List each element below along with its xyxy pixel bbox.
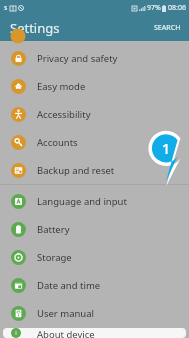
button[interactable]: Accounts [0,128,189,156]
staticText: 97% [147,3,161,13]
staticText: About device [37,328,95,338]
button[interactable]: Battery [0,215,189,243]
button[interactable]: Backup and reset [0,156,189,184]
staticText: Language and input [37,195,127,208]
staticText: Accessibility [37,108,91,121]
button[interactable]: Easy mode [0,72,189,100]
staticText: 1 [144,138,188,158]
button[interactable]: Accessibility [0,100,189,128]
button[interactable]: Step 1 marker [144,129,188,187]
staticText: Date and time [37,279,101,292]
button[interactable]: SEARCH [146,17,189,39]
staticText: Storage [37,251,72,264]
staticText: Settings [10,19,60,37]
button[interactable]: Language and input [0,187,189,215]
button[interactable]: Privacy and safety [0,44,189,72]
staticText: User manual [37,307,94,320]
staticText: Accounts [37,136,78,149]
staticText: Battery [37,223,70,236]
button[interactable]: Date and time [0,271,189,299]
staticText: 08:06 [168,3,186,13]
staticText: Easy mode [37,80,86,93]
staticText: S [4,4,8,12]
staticText: Backup and reset [37,164,115,177]
button[interactable]: About device [3,328,186,338]
button[interactable]: User manual [0,299,189,327]
button[interactable]: Storage [0,243,189,271]
staticText: Privacy and safety [37,52,118,65]
staticText: SEARCH [154,23,181,33]
